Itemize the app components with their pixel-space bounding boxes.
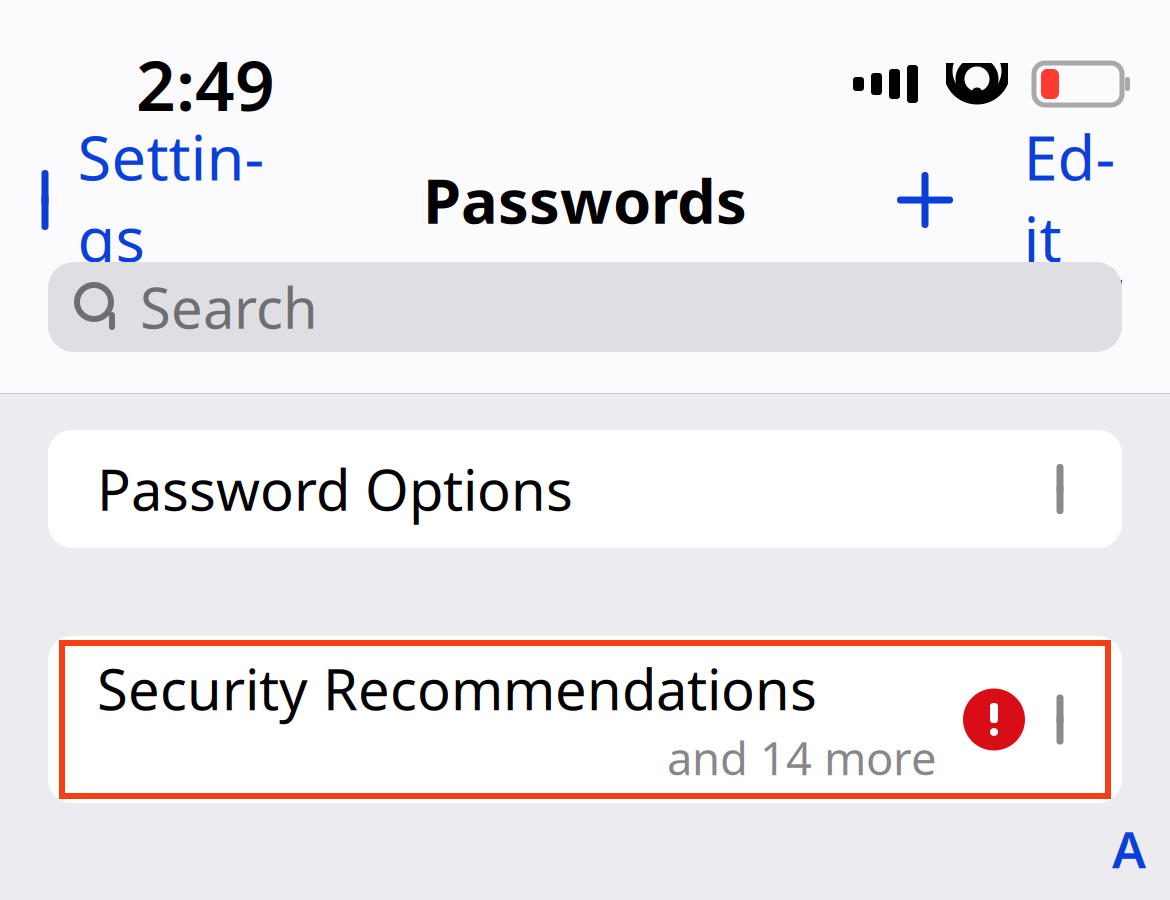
button[interactable]: Add password	[885, 170, 965, 230]
button[interactable]: Password Options	[48, 430, 1122, 548]
staticText: Password Options	[97, 452, 573, 526]
staticText: Passwords	[423, 159, 747, 241]
staticText: Edit	[1023, 116, 1115, 279]
staticText: Search	[140, 270, 318, 344]
staticText: Security Recommendations	[97, 651, 817, 726]
staticText: A	[1112, 815, 1146, 882]
button[interactable]: Security Recommendations	[48, 636, 1122, 803]
staticText: and 14 more	[667, 728, 937, 788]
staticText: 2:49	[136, 38, 275, 130]
button[interactable]: Search	[48, 262, 1122, 352]
staticText: Settings	[77, 116, 264, 279]
button[interactable]: Edit	[1017, 116, 1170, 284]
button[interactable]: Settings	[0, 116, 270, 284]
